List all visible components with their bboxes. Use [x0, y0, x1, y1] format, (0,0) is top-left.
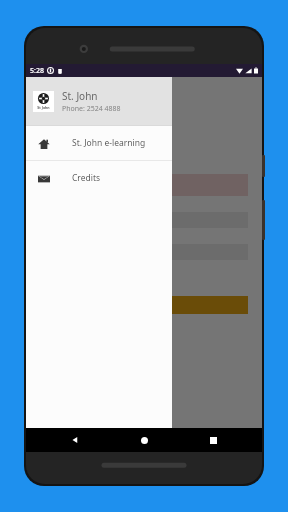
staticText: St. John — [62, 89, 98, 103]
button[interactable]: Recent apps — [193, 428, 233, 452]
staticText: Please log in again. — [46, 180, 119, 191]
staticText: Credits — [72, 172, 101, 184]
button[interactable]: Back — [55, 428, 95, 452]
staticText: St John — [37, 105, 50, 110]
staticText: 5:28 — [30, 66, 44, 76]
button[interactable]: Home — [124, 428, 164, 452]
staticText: St. John — [40, 133, 115, 162]
button[interactable]: LOG IN — [40, 296, 248, 314]
button[interactable]: St. John e-learning — [26, 126, 172, 160]
staticText: St. John e-learning — [72, 137, 146, 149]
staticText: Phone: 2524 4888 — [62, 104, 121, 114]
button[interactable]: St John — [26, 77, 172, 125]
button[interactable]: Credits — [26, 161, 172, 195]
